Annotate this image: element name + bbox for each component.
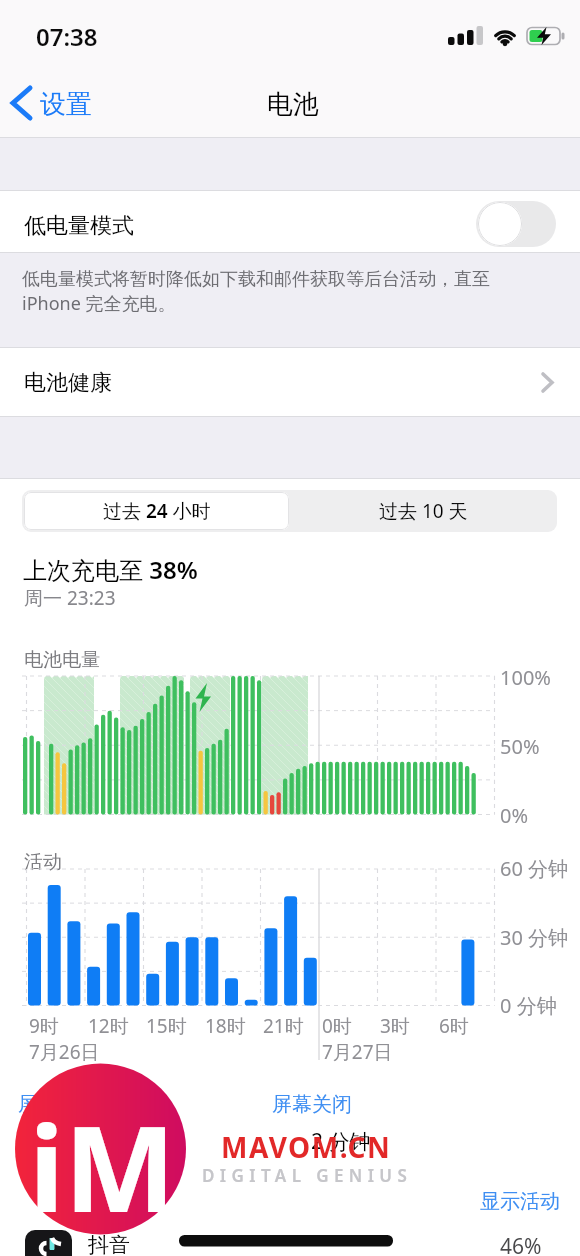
staticText: 低电量模式 [24, 212, 134, 240]
button[interactable] [0, 348, 580, 416]
staticText: 显示活动 [480, 1189, 560, 1214]
staticText: 60 分钟 [500, 855, 569, 879]
staticText: 0% [500, 802, 529, 826]
staticText: 抖音 [88, 1232, 130, 1256]
staticText: 30 分钟 [500, 924, 569, 948]
staticText: 屏幕开启 [18, 1092, 98, 1116]
button[interactable]: 过去 10 天 [290, 492, 557, 530]
staticText: 上次充电至 38% [23, 553, 198, 583]
staticText: 7月27日 [322, 1039, 393, 1063]
staticText: 6时 [439, 1013, 469, 1037]
staticText: 7月26日 [29, 1039, 100, 1063]
staticText: 3时 [380, 1013, 410, 1037]
staticText: 07:38 [36, 20, 98, 50]
button[interactable] [0, 1228, 580, 1256]
staticText: 过去 24 小时 [103, 498, 211, 524]
staticText: 低电量模式将暂时降低如下载和邮件获取等后台活动，直至 [22, 268, 490, 291]
staticText: MAVOM.CN [221, 1128, 392, 1160]
staticText: 9时 [29, 1013, 59, 1037]
staticText: 3 小时 34 分钟 [47, 1127, 184, 1155]
button[interactable]: 显示活动 [480, 1188, 570, 1214]
staticText: iPhone 完全充电。 [22, 291, 176, 316]
staticText: 活动 [24, 850, 62, 874]
staticText: 电池 [267, 88, 319, 120]
staticText: 0 分钟 [500, 992, 557, 1016]
button[interactable]: 设置 [40, 88, 120, 120]
staticText: 21时 [263, 1013, 304, 1037]
staticText: 过去 10 天 [379, 498, 468, 524]
staticText: 周一 23:23 [24, 585, 116, 609]
staticText: 15时 [146, 1013, 187, 1037]
button[interactable] [476, 201, 556, 247]
staticText: 100% [500, 664, 551, 688]
staticText: 2 分钟 [311, 1127, 371, 1155]
staticText: 12时 [88, 1013, 129, 1037]
staticText: 0时 [322, 1013, 352, 1037]
staticText: iM [29, 1086, 176, 1214]
staticText: 屏幕关闭 [272, 1092, 352, 1116]
button[interactable] [0, 191, 580, 252]
staticText: 电池电量 [24, 648, 100, 672]
staticText: 50% [500, 733, 540, 757]
staticText: DIGITAL GENIUS [202, 1164, 413, 1187]
staticText: 电池健康 [24, 369, 112, 397]
button[interactable] [24, 492, 289, 530]
staticText: 设置 [40, 88, 92, 120]
staticText: 18时 [205, 1013, 246, 1037]
staticText: 46% [500, 1232, 542, 1256]
